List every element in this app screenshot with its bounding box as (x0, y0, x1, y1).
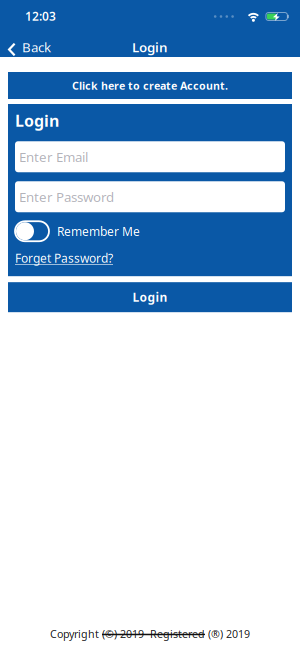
staticText: Remember Me (57, 223, 140, 239)
staticText: 12:03 (25, 8, 56, 24)
staticText: Enter Email (19, 148, 88, 166)
button[interactable]: Back (0, 38, 51, 56)
button[interactable]: Forget Password? (15, 250, 113, 266)
staticText: Login (132, 38, 168, 56)
staticText: Login (132, 289, 167, 305)
button[interactable]: Login (8, 282, 292, 312)
button[interactable]: Remember Me (15, 221, 49, 241)
button[interactable]: Click here to create Account. (8, 72, 292, 99)
staticText: Copyright (50, 627, 102, 641)
staticText: (®) 2019 (205, 627, 250, 641)
staticText: Login (15, 110, 59, 131)
staticText: (©) 2019 Registered (102, 627, 205, 641)
staticText: Enter Password (19, 188, 114, 206)
staticText: Forget Password? (15, 250, 113, 266)
staticText: Click here to create Account. (72, 78, 228, 93)
staticText: Back (22, 38, 51, 56)
